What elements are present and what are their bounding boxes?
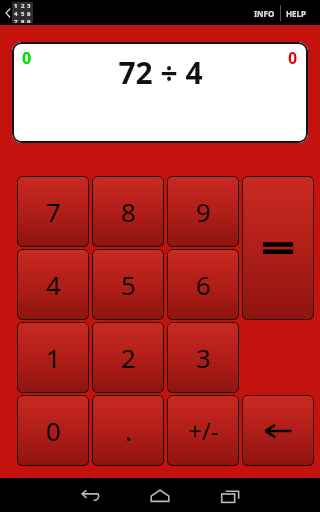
- staticText: 4: [46, 267, 61, 302]
- staticText: 9: [27, 18, 31, 23]
- staticText: 7: [14, 18, 18, 23]
- staticText: 8: [121, 194, 136, 229]
- button[interactable]: 3: [167, 322, 239, 393]
- button[interactable]: 5: [92, 249, 164, 320]
- staticText: 9: [196, 194, 211, 229]
- button[interactable]: 8: [92, 176, 164, 247]
- staticText: 6: [196, 267, 211, 302]
- button[interactable]: Equals: [242, 176, 314, 320]
- staticText: 0: [22, 47, 32, 69]
- staticText: 1: [46, 340, 61, 375]
- staticText: 7: [46, 194, 61, 229]
- button[interactable]: Back: [68, 478, 112, 512]
- staticText: 72 ÷ 4: [118, 52, 203, 93]
- staticText: .: [125, 413, 132, 448]
- staticText: +/-: [188, 414, 219, 447]
- staticText: HELP: [286, 8, 307, 19]
- button[interactable]: 2: [92, 322, 164, 393]
- staticText: 6: [27, 10, 31, 18]
- staticText: 2: [121, 340, 136, 375]
- button[interactable]: 7: [17, 176, 89, 247]
- staticText: 2: [21, 2, 25, 10]
- button[interactable]: INFO: [249, 8, 280, 19]
- button[interactable]: Recent apps: [208, 478, 252, 512]
- staticText: 3: [196, 340, 211, 375]
- staticText: 0: [288, 47, 298, 69]
- button[interactable]: 1: [17, 322, 89, 393]
- staticText: 0: [46, 413, 61, 448]
- button[interactable]: 0: [12, 42, 308, 143]
- staticText: 5: [21, 10, 25, 18]
- button[interactable]: Backspace: [242, 395, 314, 466]
- button[interactable]: 9: [167, 176, 239, 247]
- staticText: 5: [121, 267, 136, 302]
- button[interactable]: 6: [167, 249, 239, 320]
- staticText: 3: [27, 2, 31, 10]
- staticText: 8: [21, 18, 25, 23]
- staticText: INFO: [254, 8, 275, 19]
- button[interactable]: Home: [138, 478, 182, 512]
- staticText: 4: [14, 10, 18, 18]
- button[interactable]: 4: [17, 249, 89, 320]
- button[interactable]: .: [92, 395, 164, 466]
- staticText: 1: [14, 2, 18, 10]
- button[interactable]: +/-: [167, 395, 239, 466]
- button[interactable]: 0: [17, 395, 89, 466]
- button[interactable]: HELP: [281, 8, 312, 19]
